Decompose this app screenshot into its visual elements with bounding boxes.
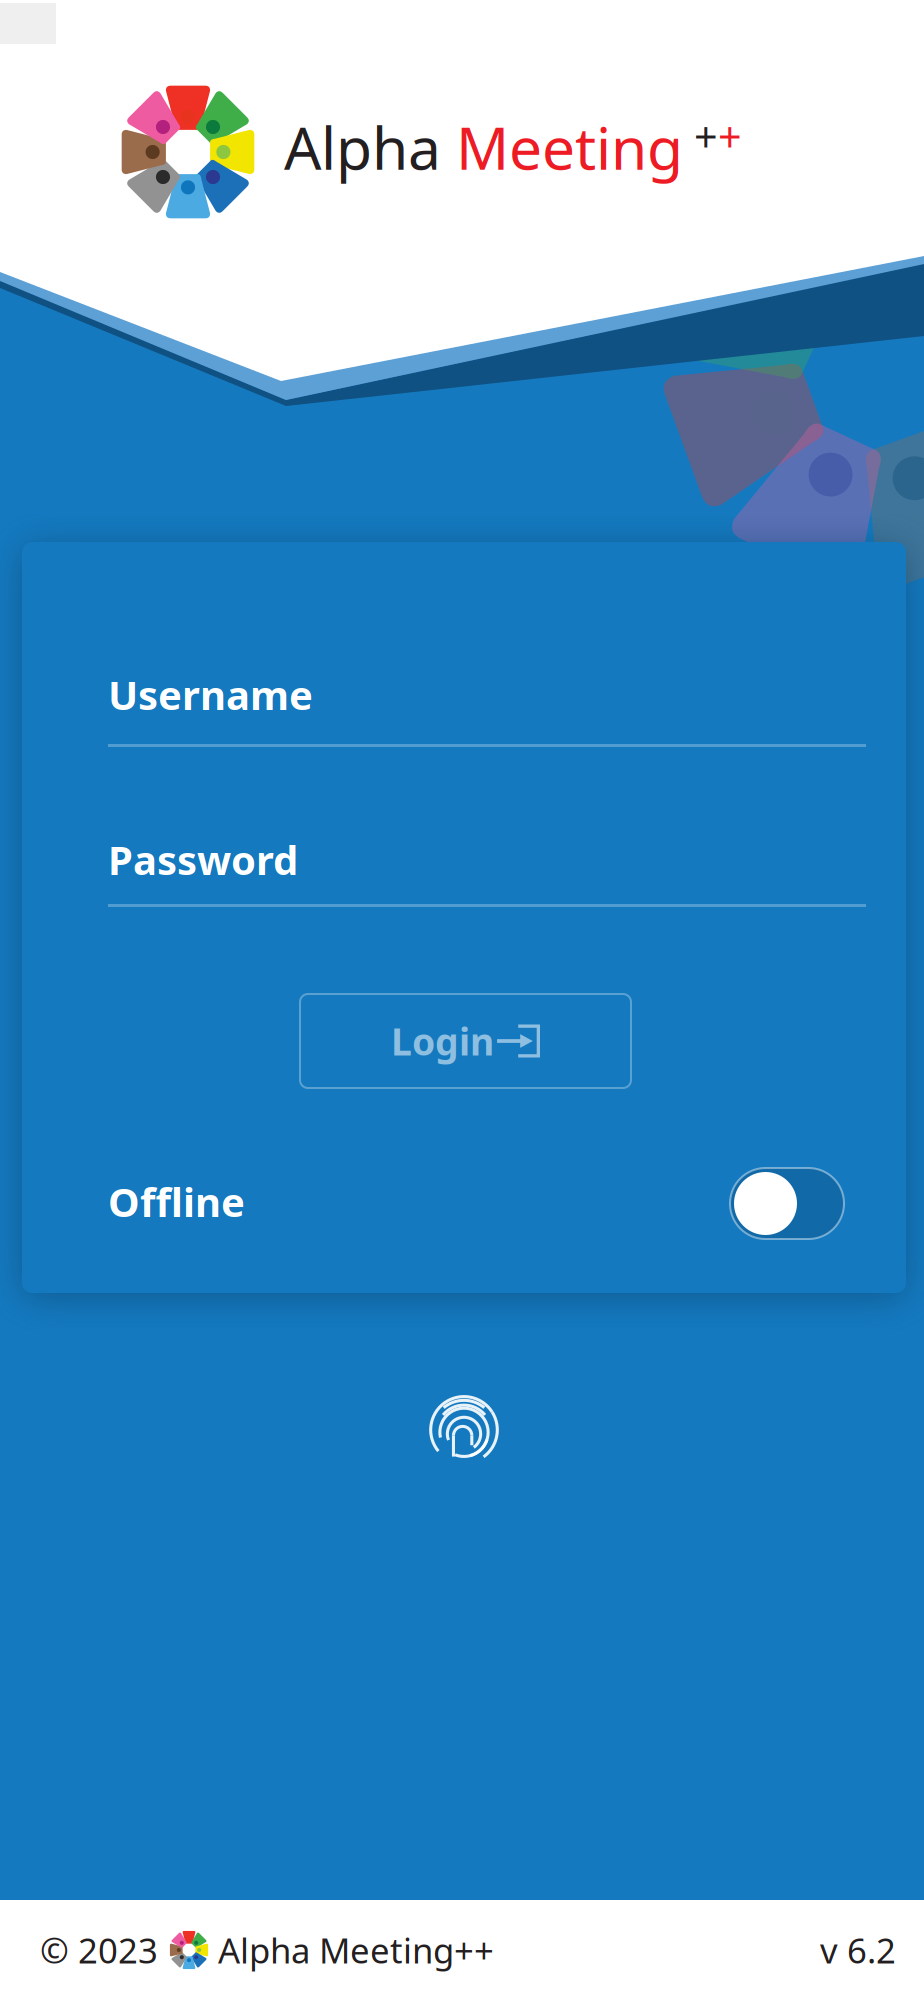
staticText: Alpha — [284, 108, 456, 186]
staticText: Password — [108, 833, 298, 886]
staticText: Meeting — [456, 108, 683, 186]
staticText: + — [683, 109, 718, 164]
button[interactable]: Login — [300, 994, 631, 1088]
button[interactable]: Offline mode — [730, 1168, 844, 1239]
staticText: Offline — [108, 1175, 245, 1228]
button[interactable]: Sign in with fingerprint — [430, 1387, 498, 1468]
staticText: Login — [391, 1016, 494, 1066]
staticText: + — [718, 109, 742, 164]
staticText: Alpha Meeting++ — [218, 1927, 494, 1973]
staticText: Username — [108, 668, 313, 721]
staticText: v 6.2 — [820, 1927, 896, 1973]
staticText: © 2023 — [40, 1927, 158, 1973]
